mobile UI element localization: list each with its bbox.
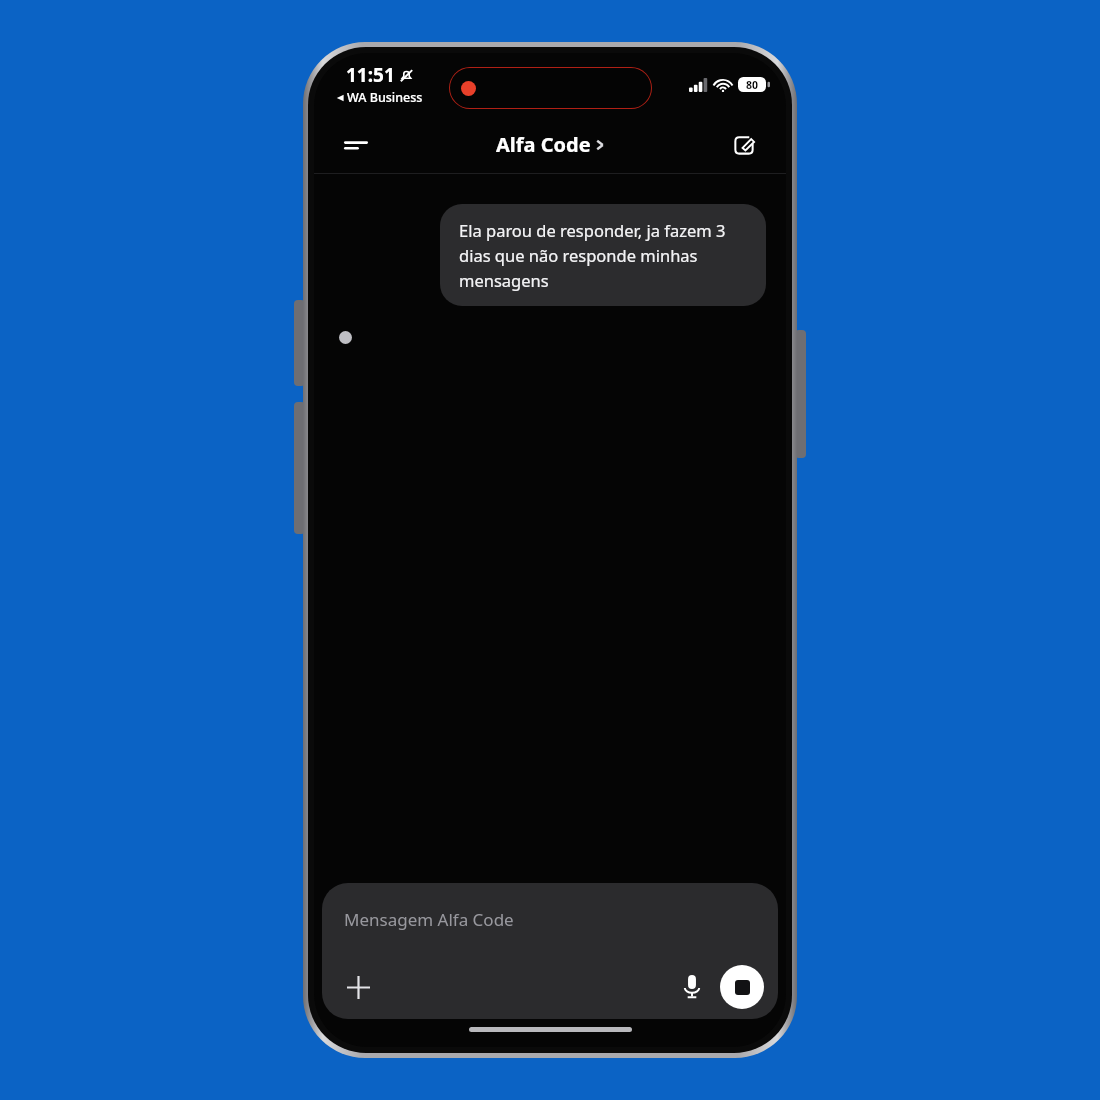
staticText: 11:51 <box>346 62 395 88</box>
button[interactable]: Menu <box>334 123 378 167</box>
button[interactable]: Stop <box>720 965 764 1009</box>
staticText: 80 <box>746 78 759 92</box>
staticText: Ela parou de responder, ja fazem 3 dias … <box>459 219 747 291</box>
staticText: WA Business <box>347 89 423 106</box>
staticText: Alfa Code <box>496 131 591 158</box>
staticText: Mensagem Alfa Code <box>344 908 514 931</box>
button[interactable]: Ela parou de responder, ja fazem 3 dias … <box>440 204 766 306</box>
button[interactable]: New chat <box>722 123 766 167</box>
button[interactable]: Add attachment <box>336 965 380 1009</box>
button[interactable]: Voice input <box>670 965 714 1009</box>
button[interactable]: Alfa Code <box>496 131 604 158</box>
